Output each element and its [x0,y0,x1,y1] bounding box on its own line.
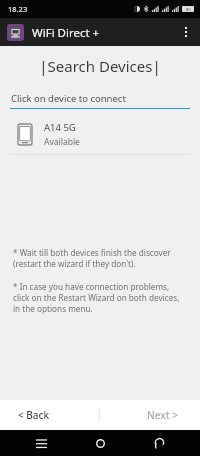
button[interactable]: Home [82,430,118,456]
staticText: 80 [186,7,191,12]
button[interactable]: More options [172,18,200,46]
button[interactable]: Recent apps [23,430,59,456]
button[interactable]: A14 5G [0,116,200,154]
staticText: |Search Devices| [39,56,161,76]
staticText: Next > [147,408,178,422]
staticText: * Wait till both devices finish the disc… [13,247,187,269]
staticText: < Back [18,408,50,422]
staticText: A14 5G [44,121,76,134]
staticText: Click on device to connect [11,92,126,105]
staticText: * In case you have connection problems, … [13,281,187,314]
staticText: 18.23 [8,4,28,14]
button[interactable]: < Back [0,400,99,430]
button[interactable]: Next > [100,400,200,430]
button[interactable]: Back [141,430,177,456]
staticText: Available [44,136,80,148]
staticText: WiFi Direct + [32,25,100,41]
